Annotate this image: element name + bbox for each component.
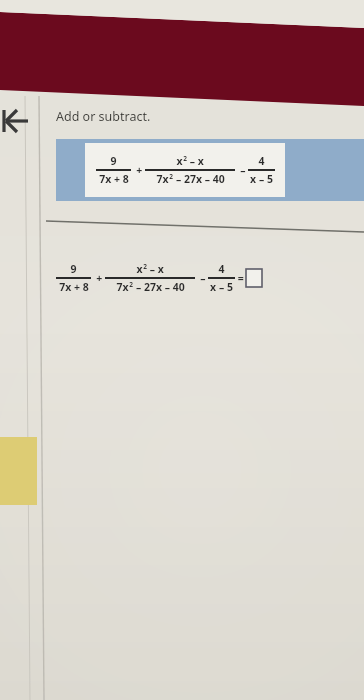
staticText: = xyxy=(235,271,244,285)
staticText: 7x + 8 xyxy=(99,172,129,186)
staticText: – xyxy=(236,163,247,177)
staticText: x – 5 xyxy=(250,172,273,186)
staticText: 9 xyxy=(70,262,77,276)
staticText: – 27x – 40 xyxy=(133,280,185,294)
staticText: 7x xyxy=(156,172,169,186)
staticText: – x xyxy=(147,262,164,276)
staticText: + xyxy=(92,271,104,285)
staticText: Add or subtract. xyxy=(56,108,151,125)
staticText: 2 xyxy=(143,262,147,271)
staticText: 7x + 8 xyxy=(59,280,89,294)
button[interactable]: Back xyxy=(0,104,32,138)
staticText: 4 xyxy=(218,262,225,276)
staticText: – x xyxy=(187,154,204,168)
staticText: 2 xyxy=(183,154,187,163)
button[interactable]: Answer input box xyxy=(246,269,262,287)
staticText: – xyxy=(196,271,207,285)
staticText: x xyxy=(136,262,143,276)
button[interactable]: 9 xyxy=(56,139,364,201)
staticText: x xyxy=(176,154,183,168)
staticText: – 27x – 40 xyxy=(173,172,225,186)
button[interactable]: 9 xyxy=(56,262,262,294)
staticText: 2 xyxy=(129,280,133,289)
staticText: 2 xyxy=(169,172,173,181)
staticText: + xyxy=(132,163,144,177)
staticText: 9 xyxy=(110,154,117,168)
staticText: x – 5 xyxy=(210,280,233,294)
staticText: 4 xyxy=(258,154,265,168)
staticText: 7x xyxy=(116,280,129,294)
